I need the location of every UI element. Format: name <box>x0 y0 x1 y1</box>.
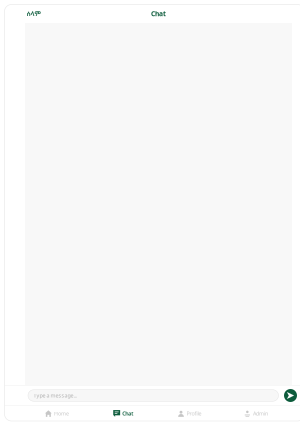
button[interactable]: Admin <box>223 406 289 421</box>
staticText: Chat <box>122 410 133 417</box>
staticText: Type a message... <box>33 392 76 399</box>
button[interactable]: ሰላም <box>4 4 43 23</box>
button[interactable]: Send <box>284 389 297 402</box>
button[interactable]: Chat <box>90 406 156 421</box>
staticText: Home <box>54 410 69 417</box>
staticText: ሰላም <box>26 9 40 18</box>
button[interactable]: Profile <box>156 406 223 421</box>
staticText: Profile <box>187 410 202 417</box>
staticText: Chat <box>151 9 166 18</box>
staticText: Admin <box>253 410 268 417</box>
button[interactable]: Home <box>24 406 90 421</box>
